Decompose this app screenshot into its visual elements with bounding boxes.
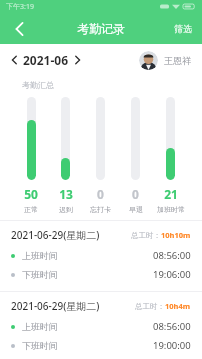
staticText: 忘打卡 xyxy=(90,205,111,214)
staticText: 正常 xyxy=(24,205,38,214)
staticText: 19:06:00 xyxy=(153,268,191,281)
staticText: 下班时间 xyxy=(22,340,58,351)
staticText: 13 xyxy=(59,186,73,202)
staticText: 0 xyxy=(97,186,104,202)
staticText: 王恩祥 xyxy=(164,55,191,66)
staticText: 加班时常 xyxy=(157,205,185,214)
staticText: 上班时间 xyxy=(22,250,58,261)
staticText: 上班时间 xyxy=(22,321,58,332)
staticText: 21 xyxy=(164,186,178,202)
button[interactable]: 2021-06 xyxy=(11,52,81,68)
button[interactable]: 王恩祥 xyxy=(139,51,191,70)
staticText: 下班时间 xyxy=(22,269,58,280)
staticText: 考勤汇总 xyxy=(22,80,54,90)
button[interactable]: Back xyxy=(0,13,38,44)
staticText: 早退 xyxy=(129,205,143,214)
staticText: 08:56:00 xyxy=(153,249,191,262)
staticText: 2021-06 xyxy=(23,52,69,68)
staticText: 迟到 xyxy=(59,205,73,214)
staticText: 50 xyxy=(24,186,38,202)
button[interactable]: 2021-06-29(星期二) xyxy=(0,221,202,291)
staticText: 总工时： xyxy=(135,302,165,311)
staticText: 筛选 xyxy=(174,23,192,34)
staticText: 0 xyxy=(132,186,139,202)
staticText: 2021-06-29(星期二) xyxy=(11,299,100,313)
button[interactable]: 筛选 xyxy=(164,13,202,44)
staticText: 10h4m xyxy=(165,301,191,311)
staticText: 10h10m xyxy=(161,230,191,240)
staticText: 下午3:19 xyxy=(6,2,34,12)
staticText: 2021-06-29(星期二) xyxy=(11,228,100,242)
staticText: 考勤记录 xyxy=(77,21,125,36)
staticText: 08:56:00 xyxy=(153,320,191,333)
button[interactable]: 2021-06-29(星期二) xyxy=(0,292,202,359)
staticText: 总工时： xyxy=(131,231,161,240)
staticText: 19:00:00 xyxy=(153,339,191,352)
